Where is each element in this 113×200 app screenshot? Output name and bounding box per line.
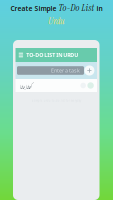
staticText: کھانا بنانا [19, 79, 31, 91]
button[interactable]: Edit task [80, 83, 86, 88]
staticText: Enter a task [51, 67, 80, 74]
staticText: Create Simple To-Do List in [10, 2, 102, 14]
staticText: TO-DO LIST IN URDU [26, 51, 78, 59]
staticText: Urdu [48, 15, 65, 27]
button[interactable]: TO-DO LIST IN URDU [15, 48, 97, 62]
button[interactable]: Add task [84, 65, 94, 75]
button[interactable]: Complete task [87, 82, 94, 89]
